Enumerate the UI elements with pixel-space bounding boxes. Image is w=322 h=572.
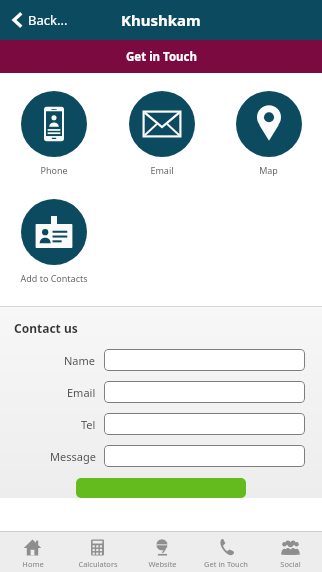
button[interactable]: Phone bbox=[0, 89, 108, 178]
staticText: Khushkam bbox=[121, 10, 201, 30]
staticText: Get in Touch bbox=[126, 49, 197, 65]
button[interactable]: Calculators bbox=[65, 535, 130, 569]
button[interactable]: Get in Touch bbox=[0, 40, 322, 73]
button[interactable] bbox=[104, 413, 305, 435]
staticText: Phone bbox=[40, 164, 68, 176]
button[interactable]: Home bbox=[0, 535, 65, 569]
staticText: Add to Contacts bbox=[20, 272, 88, 284]
staticText: Back... bbox=[28, 11, 68, 29]
staticText: Name bbox=[64, 353, 96, 368]
button[interactable]: Social bbox=[258, 535, 322, 569]
staticText: Map bbox=[259, 164, 278, 176]
button[interactable]: Map bbox=[215, 89, 322, 178]
staticText: Contact us bbox=[14, 320, 78, 336]
staticText: Tel bbox=[81, 417, 96, 432]
staticText: Email bbox=[67, 385, 96, 400]
button[interactable] bbox=[104, 445, 305, 467]
button[interactable] bbox=[104, 381, 305, 403]
staticText: Social bbox=[280, 559, 301, 569]
button[interactable]: Get in Touch bbox=[194, 535, 258, 569]
button[interactable] bbox=[76, 478, 246, 498]
staticText: Calculators bbox=[78, 559, 118, 569]
button[interactable]: Back... bbox=[8, 7, 72, 33]
button[interactable] bbox=[104, 349, 305, 371]
button[interactable]: Email bbox=[108, 89, 215, 178]
staticText: Email bbox=[150, 164, 174, 176]
button[interactable]: Website bbox=[130, 535, 194, 569]
staticText: Get in Touch bbox=[204, 559, 248, 569]
staticText: Home bbox=[22, 559, 44, 569]
staticText: Website bbox=[148, 559, 177, 569]
button[interactable]: Add to Contacts bbox=[0, 197, 108, 286]
staticText: Message bbox=[50, 449, 96, 464]
